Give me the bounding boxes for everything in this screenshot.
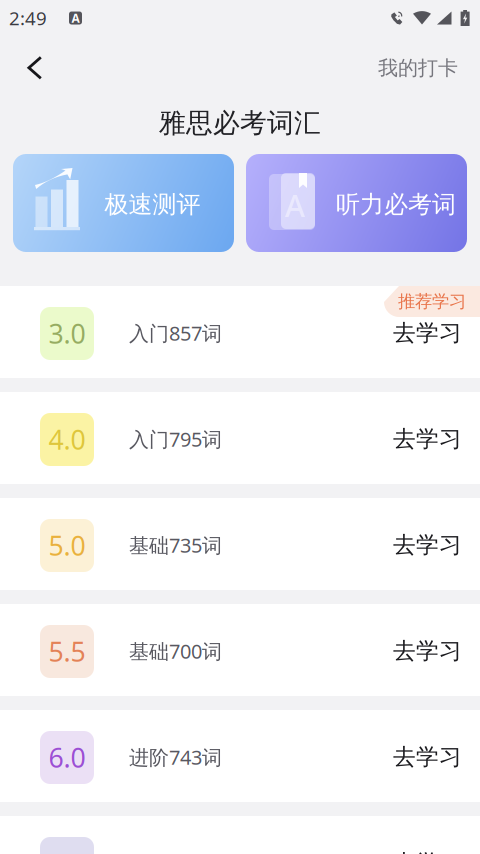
staticText: 去学习: [393, 425, 462, 453]
staticText: 5.0: [48, 528, 85, 563]
staticText: 进阶743词: [129, 744, 222, 770]
button[interactable]: 5.5: [0, 604, 480, 696]
staticText: 2:49: [9, 6, 47, 30]
button[interactable]: 4.0: [0, 392, 480, 484]
staticText: 去学习: [393, 637, 462, 665]
staticText: 6.0: [48, 740, 85, 775]
staticText: A: [71, 10, 79, 26]
staticText: 5.5: [48, 634, 85, 669]
staticText: 4.0: [48, 422, 85, 457]
staticText: 推荐学习: [398, 291, 466, 312]
staticText: 基础735词: [129, 532, 222, 558]
staticText: 入门795词: [129, 426, 222, 452]
button[interactable]: 5.0: [0, 498, 480, 590]
staticText: 入门857词: [129, 320, 222, 346]
button[interactable]: 6.5: [0, 816, 480, 854]
staticText: A: [285, 185, 305, 225]
button[interactable]: 极速测评: [13, 154, 234, 252]
button[interactable]: 我的打卡: [367, 42, 469, 94]
staticText: 去学习: [393, 849, 462, 854]
staticText: 3.0: [48, 316, 85, 351]
staticText: 我的打卡: [378, 56, 458, 80]
staticText: 去学习: [393, 743, 462, 771]
staticText: 去学习: [393, 319, 462, 347]
button[interactable]: 3.0: [0, 286, 480, 378]
staticText: 雅思必考词汇: [159, 107, 321, 139]
button[interactable]: 返回: [9, 42, 61, 94]
staticText: 去学习: [393, 531, 462, 559]
button[interactable]: A: [246, 154, 467, 252]
staticText: 听力必考词: [336, 190, 456, 219]
staticText: 极速测评: [104, 190, 200, 219]
button[interactable]: 6.0: [0, 710, 480, 802]
staticText: 基础700词: [129, 638, 222, 664]
